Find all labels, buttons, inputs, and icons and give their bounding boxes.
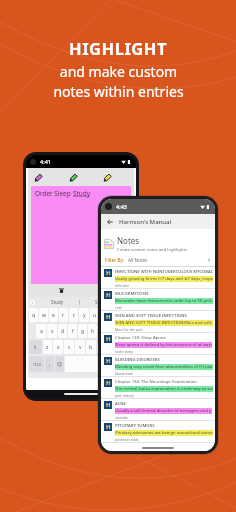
button[interactable]: b bbox=[86, 340, 96, 354]
staticText: s bbox=[51, 328, 54, 335]
staticText: p bbox=[126, 312, 130, 319]
button[interactable]: ⇧ bbox=[29, 340, 42, 354]
button[interactable]: H bbox=[101, 421, 215, 443]
button[interactable]: p bbox=[123, 308, 133, 322]
button[interactable]: n bbox=[97, 340, 107, 354]
staticText: k bbox=[111, 328, 114, 335]
button[interactable]: c bbox=[64, 340, 74, 354]
staticText: v bbox=[79, 344, 82, 351]
staticText: j bbox=[102, 328, 104, 335]
button[interactable]: q bbox=[29, 308, 38, 322]
staticText: H bbox=[106, 357, 111, 365]
staticText: Bleeding may result from abnormalities o… bbox=[115, 364, 213, 370]
button[interactable]: w bbox=[39, 308, 48, 322]
staticText: Notes bbox=[117, 235, 140, 246]
button[interactable]: f bbox=[68, 324, 77, 338]
button[interactable]: h bbox=[88, 324, 97, 338]
button[interactable]: H bbox=[101, 355, 215, 377]
staticText: H bbox=[106, 269, 111, 277]
button[interactable]: l bbox=[118, 324, 127, 338]
button[interactable]: H bbox=[101, 311, 215, 333]
staticText: 4:43 bbox=[116, 203, 127, 210]
button[interactable]: j bbox=[98, 324, 107, 338]
staticText: and make custom notes within entries bbox=[53, 62, 184, 101]
button[interactable]: ☺ bbox=[55, 356, 64, 372]
staticText: 4:41 bbox=[40, 158, 51, 165]
staticText: u bbox=[93, 312, 97, 319]
staticText: y bbox=[83, 312, 86, 319]
staticText: MUCORMYCOSIS bbox=[115, 291, 149, 297]
staticText: HIGHLIGHT bbox=[69, 37, 167, 59]
staticText: a bbox=[40, 328, 43, 335]
staticText: Sleep apnea is defined by the presence o… bbox=[115, 342, 212, 348]
staticText: r bbox=[62, 312, 65, 319]
staticText: › bbox=[32, 300, 34, 305]
button[interactable]: Pink highlighter bbox=[34, 173, 43, 182]
staticText: steroids bbox=[115, 415, 128, 420]
button[interactable]: x bbox=[53, 340, 63, 354]
button[interactable]: a bbox=[36, 324, 46, 338]
button[interactable]: e bbox=[49, 308, 58, 322]
button[interactable]: s bbox=[47, 324, 57, 338]
staticText: ?123 bbox=[33, 362, 41, 367]
button[interactable]: , bbox=[45, 356, 54, 372]
button[interactable]: ↵ bbox=[119, 356, 133, 372]
button[interactable]: i bbox=[101, 308, 111, 322]
staticText: H bbox=[106, 313, 111, 321]
button[interactable]: r bbox=[59, 308, 68, 322]
button[interactable]: k bbox=[108, 324, 117, 338]
button[interactable]: H bbox=[101, 399, 215, 421]
staticText: i bbox=[105, 312, 107, 319]
button[interactable]: H bbox=[101, 289, 215, 311]
button[interactable]: y bbox=[79, 308, 89, 322]
staticText: h bbox=[91, 328, 95, 335]
staticText: d bbox=[61, 328, 65, 335]
staticText: Harrison's Manual bbox=[119, 218, 172, 226]
staticText: slowly growing forms (>7 days and ≤7 day… bbox=[115, 276, 213, 282]
button[interactable]: m bbox=[108, 340, 118, 354]
staticText: past history bbox=[115, 393, 134, 398]
button[interactable]: H bbox=[101, 333, 215, 355]
button[interactable]: v bbox=[75, 340, 85, 354]
button[interactable]: t bbox=[69, 308, 78, 322]
staticText: t bbox=[73, 312, 75, 319]
staticText: Usually a self-limited disorder of teena… bbox=[115, 408, 212, 414]
staticText: e bbox=[52, 312, 55, 319]
button[interactable]: ?123 bbox=[29, 356, 44, 372]
staticText: Studying bbox=[95, 299, 115, 305]
staticText: BLEEDING DISORDERS bbox=[115, 357, 160, 363]
staticText: Study bbox=[73, 189, 90, 198]
staticText: H bbox=[106, 291, 111, 299]
staticText: x bbox=[57, 344, 60, 351]
staticText: c bbox=[68, 344, 71, 351]
staticText: Order Sleep bbox=[35, 189, 73, 198]
button[interactable]: H bbox=[101, 377, 215, 399]
button[interactable]: g bbox=[78, 324, 87, 338]
button[interactable]: Delete bbox=[56, 285, 67, 296]
button[interactable]: d bbox=[58, 324, 67, 338]
staticText: z bbox=[46, 344, 49, 351]
button[interactable]: o bbox=[112, 308, 122, 322]
staticText: l bbox=[122, 328, 124, 335]
staticText: Chapter 182: The Neurologic Examination bbox=[115, 379, 197, 385]
button[interactable]: Close bbox=[99, 285, 110, 296]
button[interactable]: H bbox=[101, 267, 215, 289]
staticText: n bbox=[100, 344, 104, 351]
staticText: More for the quiz bbox=[115, 327, 143, 332]
button[interactable]: Back bbox=[105, 217, 114, 226]
staticText: f bbox=[72, 328, 74, 335]
staticText: Create custom notes and highlights bbox=[117, 247, 187, 253]
button[interactable] bbox=[65, 356, 108, 372]
button[interactable]: Filter By: bbox=[101, 257, 215, 266]
button[interactable]: . bbox=[109, 356, 118, 372]
staticText: ↵ bbox=[124, 361, 129, 367]
staticText: w bbox=[42, 312, 46, 319]
button[interactable]: Green highlighter bbox=[69, 173, 78, 182]
button[interactable]: z bbox=[43, 340, 52, 354]
staticText: SKIN AND SOFT TISSUE INFECTIONS bbox=[115, 313, 187, 319]
button[interactable]: Yellow highlighter bbox=[103, 173, 112, 182]
staticText: H bbox=[106, 335, 111, 343]
button[interactable]: ⌫ bbox=[119, 340, 133, 354]
button[interactable]: u bbox=[90, 308, 100, 322]
